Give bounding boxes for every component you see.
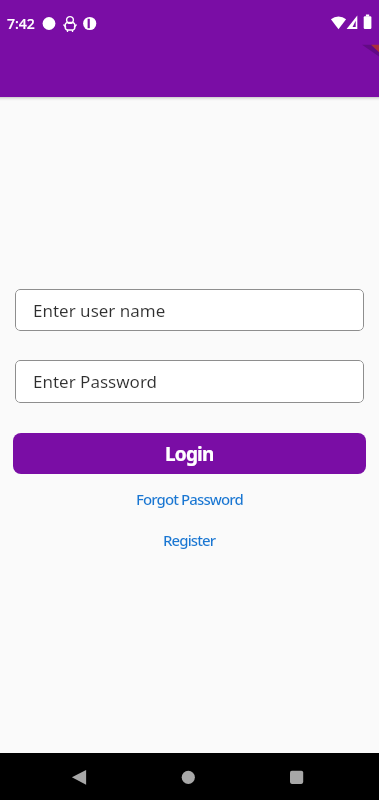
staticText: Forgot Password — [136, 489, 243, 509]
button[interactable] — [0, 753, 127, 800]
staticText: 7:42 — [7, 14, 35, 33]
button[interactable]: Register — [0, 528, 379, 552]
staticText: Enter Password — [33, 370, 158, 393]
staticText: Enter user name — [33, 299, 166, 322]
button[interactable]: Forgot Password — [0, 487, 379, 511]
button[interactable]: Enter user name — [15, 289, 364, 331]
button[interactable]: Enter Password — [15, 360, 364, 403]
button[interactable] — [253, 753, 379, 800]
staticText: Login — [165, 441, 214, 467]
button[interactable]: Login — [13, 433, 366, 474]
staticText: Register — [163, 530, 216, 550]
button[interactable] — [127, 753, 253, 800]
